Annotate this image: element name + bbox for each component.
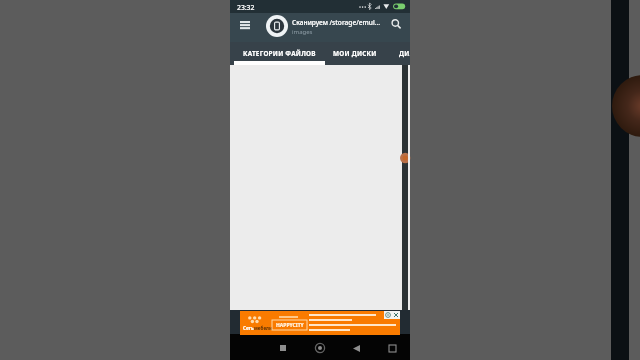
button[interactable]: МОИ ДИСКИ [325, 42, 385, 65]
button[interactable]: Back [346, 338, 366, 358]
staticText: мебели [254, 325, 273, 331]
staticText: МОИ ДИСКИ [333, 49, 377, 58]
button[interactable]: Search [385, 13, 407, 35]
staticText: HAPPYCITY [276, 322, 304, 329]
button[interactable]: Stop [273, 338, 293, 358]
button[interactable]: КАТЕГОРИИ ФАЙЛОВ [234, 42, 325, 65]
button[interactable]: Сеть [240, 311, 400, 335]
staticText: Сканируем /storage/emul… [292, 18, 381, 27]
staticText: Сеть [243, 325, 254, 331]
button[interactable]: Recent apps [382, 338, 402, 358]
button[interactable]: Ad information [384, 311, 392, 319]
button[interactable]: ДИ. [399, 42, 410, 65]
staticText: ДИ. [399, 49, 410, 58]
staticText: images [292, 28, 313, 36]
button[interactable]: Home [310, 338, 330, 358]
staticText: 23:32 [237, 3, 255, 12]
staticText: КАТЕГОРИИ ФАЙЛОВ [243, 49, 316, 58]
button[interactable]: Close ad [392, 311, 400, 319]
button[interactable]: Open navigation drawer [233, 13, 256, 36]
